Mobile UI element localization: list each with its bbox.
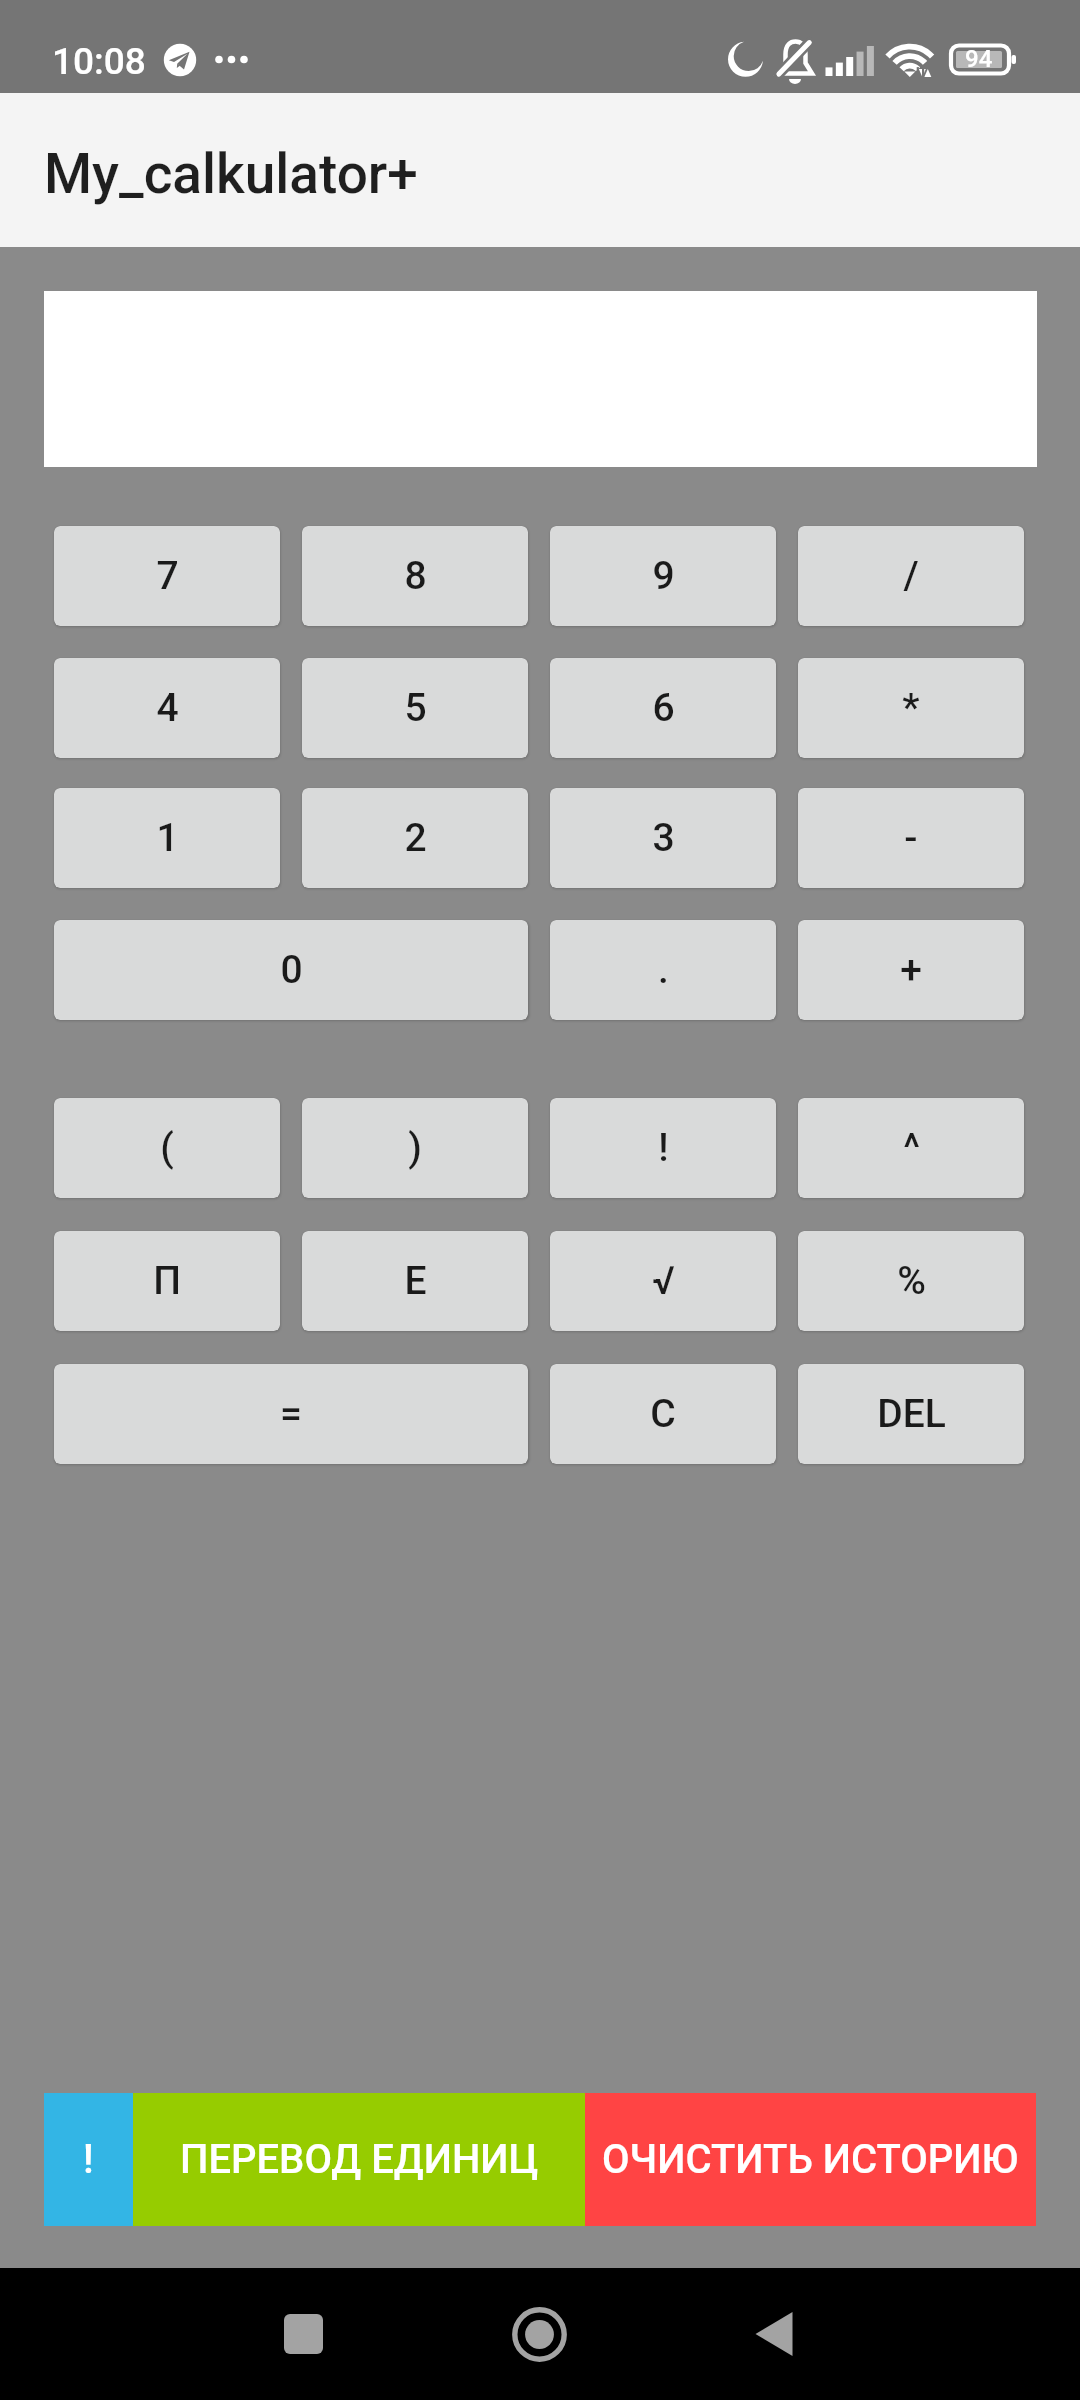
button[interactable]: DEL [798, 1364, 1024, 1464]
staticText: C [650, 1391, 676, 1437]
button[interactable]: ) [302, 1098, 528, 1198]
staticText: . [658, 947, 669, 993]
staticText: 4 [156, 685, 179, 731]
staticText: ! [658, 1125, 669, 1171]
button[interactable]: ^ [798, 1098, 1024, 1198]
staticText: + [900, 947, 922, 993]
button[interactable]: 0 [54, 920, 528, 1020]
button[interactable]: ОЧИСТИТЬ ИСТОРИЮ [585, 2093, 1036, 2226]
staticText: ОЧИСТИТЬ ИСТОРИЮ [602, 2136, 1019, 2183]
staticText: 6 [652, 685, 675, 731]
button[interactable]: 1 [54, 788, 280, 888]
staticText: √ [652, 1258, 675, 1304]
staticText: ( [160, 1125, 174, 1171]
button[interactable]: ( [54, 1098, 280, 1198]
button[interactable]: 8 [302, 526, 528, 626]
button[interactable]: 9 [550, 526, 776, 626]
button[interactable]: % [798, 1231, 1024, 1331]
button[interactable]: C [550, 1364, 776, 1464]
button[interactable]: √ [550, 1231, 776, 1331]
staticText: - [904, 815, 918, 861]
button[interactable]: 7 [54, 526, 280, 626]
button[interactable]: / [798, 526, 1024, 626]
button[interactable]: Back [751, 2308, 797, 2360]
button[interactable]: Recent apps [284, 2314, 323, 2354]
staticText: 2 [404, 815, 427, 861]
staticText: 94 [965, 45, 993, 73]
staticText: 1 [156, 815, 179, 861]
button[interactable]: 3 [550, 788, 776, 888]
staticText: 5 [404, 685, 427, 731]
button[interactable]: 4 [54, 658, 280, 758]
staticText: 10:08 [52, 40, 146, 83]
button[interactable]: ! [550, 1098, 776, 1198]
staticText: П [153, 1258, 181, 1304]
staticText: ! [83, 2136, 94, 2183]
button[interactable]: 6 [550, 658, 776, 758]
staticText: ПЕРЕВОД ЕДИНИЦ [180, 2136, 539, 2183]
staticText: 0 [280, 947, 303, 993]
button[interactable]: + [798, 920, 1024, 1020]
staticText: 8 [404, 553, 427, 599]
staticText: 7 [156, 553, 179, 599]
staticText: ) [408, 1125, 422, 1171]
staticText: = [280, 1391, 302, 1437]
button[interactable]: П [54, 1231, 280, 1331]
staticText: 3 [652, 815, 675, 861]
button[interactable]: ! [44, 2093, 133, 2226]
staticText: 9 [652, 553, 675, 599]
button[interactable]: 2 [302, 788, 528, 888]
button[interactable]: * [798, 658, 1024, 758]
staticText: * [902, 685, 920, 731]
button[interactable]: E [302, 1231, 528, 1331]
button[interactable]: ПЕРЕВОД ЕДИНИЦ [133, 2093, 585, 2226]
staticText: DEL [877, 1391, 946, 1437]
button[interactable]: . [550, 920, 776, 1020]
button[interactable]: Home [511, 2306, 568, 2363]
staticText: % [897, 1258, 926, 1304]
button[interactable]: = [54, 1364, 528, 1464]
staticText: / [903, 553, 919, 599]
button[interactable]: - [798, 788, 1024, 888]
button[interactable]: 5 [302, 658, 528, 758]
staticText: E [404, 1258, 427, 1304]
staticText: ^ [903, 1125, 920, 1171]
staticText: My_calkulator+ [44, 142, 418, 206]
